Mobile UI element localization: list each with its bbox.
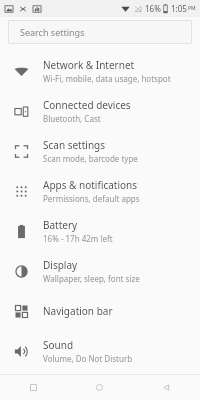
staticText: Apps & notifications [43,178,138,192]
staticText: Scan settings [43,138,106,152]
button[interactable]: Home [66,375,133,400]
staticText: Search settings [20,26,85,38]
staticText: Network & Internet [43,58,135,72]
button[interactable]: Display [0,251,200,291]
staticText: Sound [43,338,74,352]
button[interactable]: Battery [0,211,200,251]
staticText: Wi-Fi, mobile, data usage, hotspot [43,73,171,84]
button[interactable]: Sound [0,331,200,371]
button[interactable]: Recent apps [0,375,66,400]
staticText: Permissions, default apps [43,193,140,204]
staticText: Scan mode, barcode type [43,153,138,164]
staticText: 16% [145,3,161,14]
staticText: Volume, Do Not Disturb [43,353,133,364]
button[interactable]: Network & Internet [0,51,200,91]
staticText: Bluetooth, Cast [43,113,101,124]
staticText: 1:05 [171,3,187,14]
button[interactable]: Search settings [8,20,192,44]
button[interactable]: Scan settings [0,131,200,171]
staticText: Connected devices [43,98,131,112]
staticText: Navigation bar [43,304,113,318]
staticText: Battery [43,218,78,232]
staticText: PM [188,5,196,12]
staticText: 16% - 17h 42m left [43,233,113,244]
button[interactable]: Connected devices [0,91,200,131]
button[interactable]: Navigation bar [0,291,200,331]
button[interactable]: Back [133,375,200,400]
staticText: Wallpaper, sleep, font size [43,273,140,284]
button[interactable]: Apps & notifications [0,171,200,211]
staticText: Display [43,258,78,272]
